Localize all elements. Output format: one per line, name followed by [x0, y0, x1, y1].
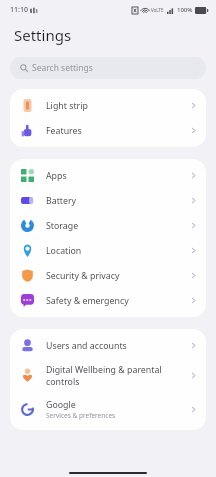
staticText: Location [46, 245, 82, 257]
button[interactable]: Google [10, 393, 206, 426]
staticText: Security & privacy [46, 270, 120, 282]
staticText: Storage [46, 220, 79, 232]
button[interactable]: Battery [10, 188, 206, 213]
staticText: 11:10 [10, 5, 28, 15]
button[interactable]: Safety & emergency [10, 288, 206, 313]
button[interactable]: Search settings [10, 57, 206, 79]
staticText: 100% [177, 6, 193, 14]
staticText: Users and accounts [46, 340, 127, 352]
button[interactable]: Security & privacy [10, 263, 206, 288]
staticText: Services & preferences [46, 411, 116, 420]
button[interactable]: Storage [10, 213, 206, 238]
staticText: Battery [46, 195, 77, 207]
button[interactable]: Features [10, 118, 206, 143]
staticText: Settings [14, 25, 72, 45]
button[interactable]: Digital Wellbeing & parental controls [10, 358, 206, 393]
staticText: Safety & emergency [46, 295, 129, 307]
staticText: Search settings [32, 62, 93, 74]
staticText: Digital Wellbeing & parental controls [46, 364, 185, 387]
button[interactable]: Apps [10, 163, 206, 188]
staticText: Apps [46, 170, 67, 182]
button[interactable]: Users and accounts [10, 333, 206, 358]
button[interactable]: Location [10, 238, 206, 263]
staticText: Light strip [46, 100, 88, 112]
button[interactable]: Light strip [10, 93, 206, 118]
staticText: Google [46, 399, 76, 411]
staticText: VoLTE [151, 7, 164, 13]
staticText: Features [46, 125, 82, 137]
